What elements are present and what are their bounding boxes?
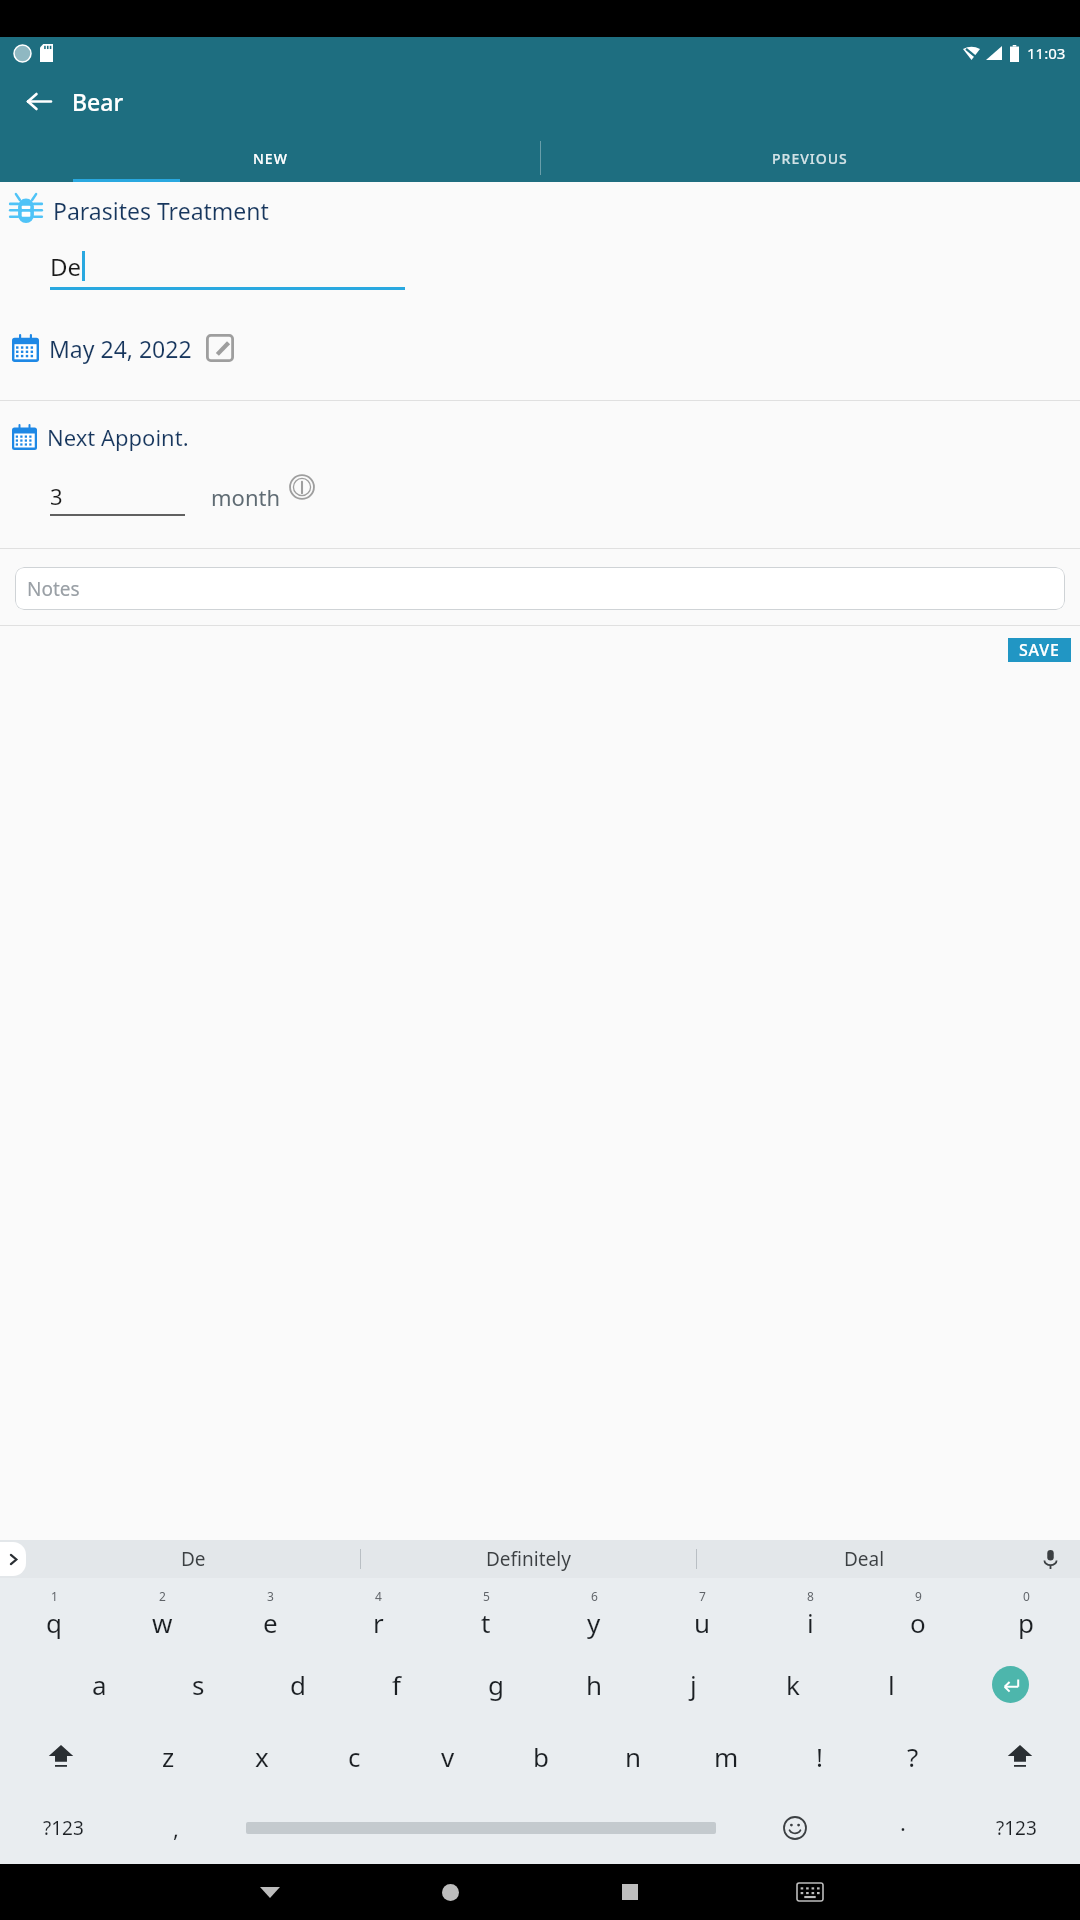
button[interactable]: SAVE [1008,638,1071,662]
staticText: 3 [50,481,63,511]
staticText: o [910,1605,926,1640]
staticText: 8 [807,1588,814,1604]
staticText: i [807,1605,814,1640]
staticText: 9 [915,1588,922,1604]
button[interactable]: 5 [432,1578,540,1649]
button[interactable]: Shift [0,1720,122,1792]
button[interactable]: f [347,1649,446,1720]
button[interactable]: Definitely [361,1540,696,1578]
button[interactable]: j [644,1649,743,1720]
staticText: a [92,1667,107,1702]
button[interactable]: PREVIOUS [540,134,1080,182]
staticText: 11:03 [1027,43,1066,63]
button[interactable]: c [308,1720,401,1792]
button[interactable]: · [854,1792,952,1864]
staticText: ? [907,1739,919,1774]
button[interactable]: s [149,1649,248,1720]
staticText: y [587,1605,601,1640]
staticText: Notes [27,576,80,602]
staticText: Definitely [486,1546,571,1572]
button[interactable]: k [743,1649,842,1720]
staticText: r [373,1605,384,1640]
button[interactable]: Deal [697,1540,1032,1578]
staticText: Deal [844,1546,885,1572]
staticText: Next Appoint. [47,422,189,452]
button[interactable]: ! [773,1720,866,1792]
button[interactable]: v [401,1720,494,1792]
button[interactable]: 7 [648,1578,756,1649]
button[interactable]: Enter [941,1649,1080,1720]
button[interactable]: Info [287,472,317,502]
button[interactable]: n [587,1720,680,1792]
button[interactable]: a [50,1649,149,1720]
staticText: · [900,1813,906,1843]
button[interactable]: Keyboard [720,1864,900,1920]
staticText: j [690,1667,697,1702]
button[interactable]: ?123 [952,1792,1080,1864]
staticText: ?123 [43,1815,84,1841]
button[interactable]: Emoji [736,1792,854,1864]
button[interactable]: ? [866,1720,959,1792]
staticText: NEW [253,149,288,168]
button[interactable]: 2 [108,1578,216,1649]
button[interactable]: Shift [959,1720,1080,1792]
button[interactable]: b [494,1720,587,1792]
button[interactable]: l [842,1649,941,1720]
staticText: PREVIOUS [772,149,848,168]
button[interactable]: h [545,1649,644,1720]
staticText: d [290,1667,306,1702]
button[interactable]: g [446,1649,545,1720]
button[interactable]: 3 [216,1578,324,1649]
button[interactable]: More suggestions [0,1542,26,1576]
staticText: q [46,1605,62,1640]
button[interactable]: Voice input [1034,1543,1066,1575]
staticText: De [181,1546,206,1572]
button[interactable]: 6 [540,1578,648,1649]
staticText: ?123 [996,1815,1037,1841]
staticText: Bear [72,86,124,117]
button[interactable]: De [26,1540,360,1578]
button[interactable]: 1 [0,1578,108,1649]
button[interactable]: Back [14,77,62,125]
button[interactable]: 9 [864,1578,972,1649]
staticText: , [173,1813,179,1843]
staticText: e [263,1605,278,1640]
staticText: l [888,1667,895,1702]
button[interactable]: Notes [15,567,1065,610]
staticText: 2 [159,1588,166,1604]
staticText: u [694,1605,711,1640]
button[interactable]: May 24, 2022 [12,330,1080,366]
staticText: May 24, 2022 [49,333,192,364]
staticText: k [786,1667,800,1702]
button[interactable]: d [248,1649,347,1720]
button[interactable]: 0 [972,1578,1080,1649]
button[interactable]: 4 [324,1578,432,1649]
staticText: h [586,1667,603,1702]
button[interactable]: ?123 [0,1792,127,1864]
button[interactable]: , [127,1792,225,1864]
staticText: month [211,482,281,512]
staticText: Parasites Treatment [53,195,269,226]
button[interactable]: Home [360,1864,540,1920]
button[interactable]: Space [225,1792,736,1864]
staticText: t [481,1605,491,1640]
staticText: ! [816,1739,823,1774]
staticText: n [625,1739,642,1774]
button[interactable]: NEW [0,134,540,182]
button[interactable]: Back [180,1864,360,1920]
button[interactable]: 8 [756,1578,864,1649]
button[interactable]: Edit date [202,330,238,366]
staticText: 6 [591,1588,598,1604]
staticText: 7 [699,1588,706,1604]
staticText: g [488,1667,504,1702]
button[interactable]: m [680,1720,773,1792]
button[interactable]: z [122,1720,215,1792]
staticText: 4 [375,1588,382,1604]
staticText: z [162,1739,175,1774]
staticText: w [152,1605,173,1640]
button[interactable]: x [215,1720,308,1792]
staticText: 0 [1023,1588,1030,1604]
staticText: SAVE [1019,639,1060,661]
button[interactable]: Recents [540,1864,720,1920]
staticText: 3 [267,1588,274,1604]
